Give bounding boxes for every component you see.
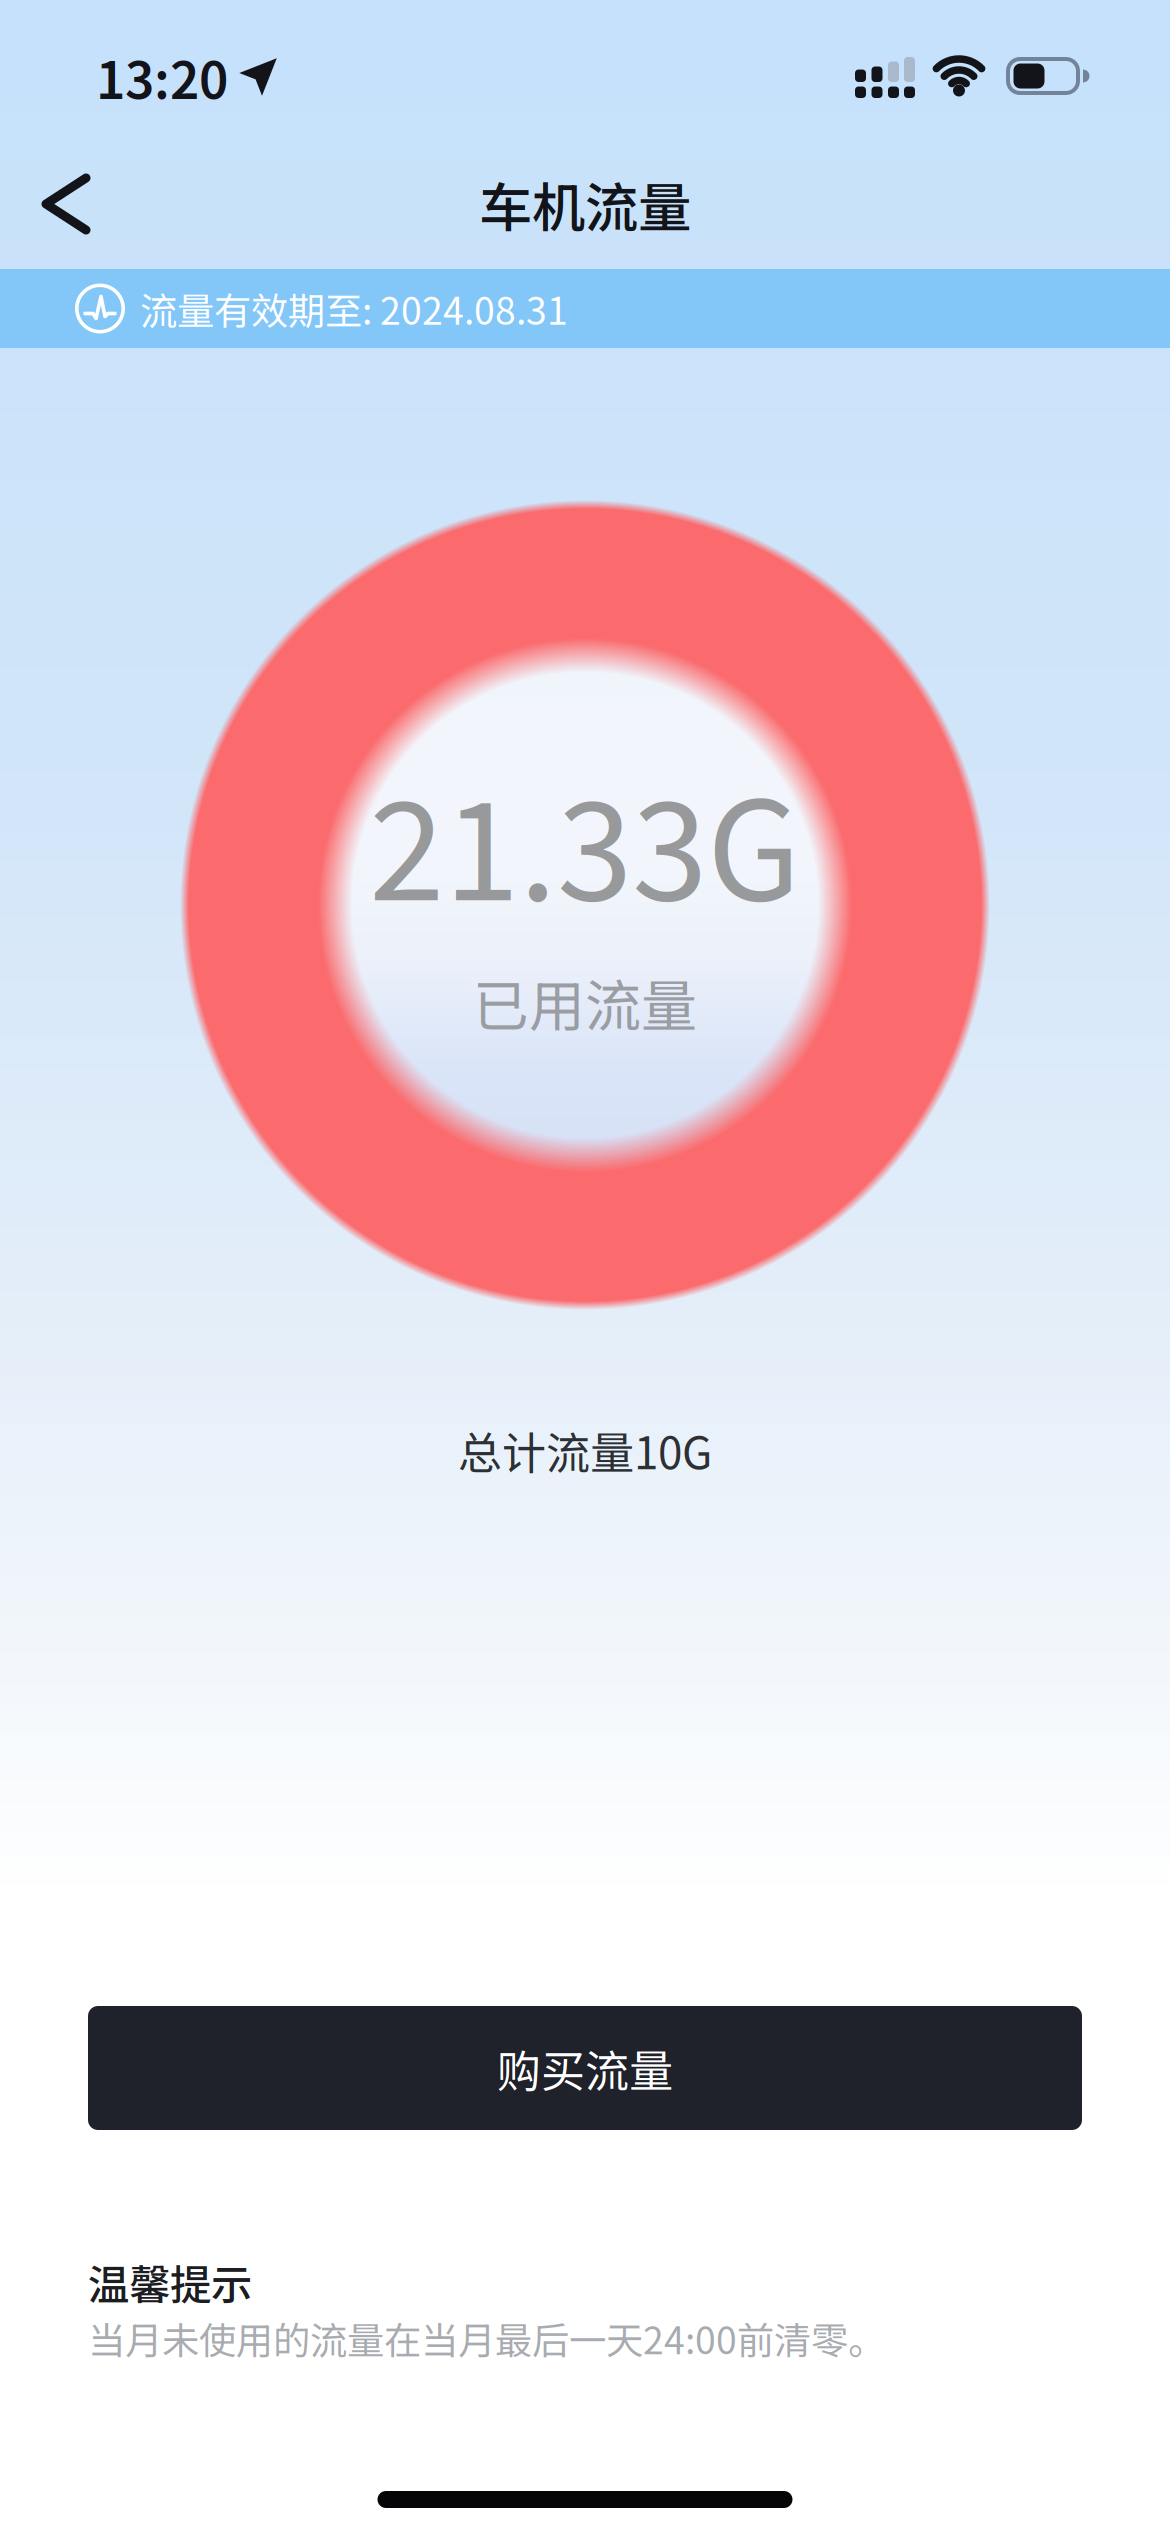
staticText: 21.33G <box>369 745 801 937</box>
button[interactable]: 购买流量 <box>88 2006 1082 2130</box>
staticText: 当月未使用的流量在当月最后一天24:00前清零。 <box>88 2312 885 2364</box>
staticText: 车机流量 <box>479 166 691 242</box>
staticText: 温馨提示 <box>88 2253 252 2311</box>
staticText: 总计流量10G <box>458 1419 712 1481</box>
staticText: 已用流量 <box>473 962 697 1042</box>
button[interactable]: Back <box>0 154 116 254</box>
staticText: 购买流量 <box>497 2037 673 2099</box>
staticText: 13:20 <box>96 41 228 113</box>
staticText: 流量有效期至: 2024.08.31 <box>140 282 568 335</box>
